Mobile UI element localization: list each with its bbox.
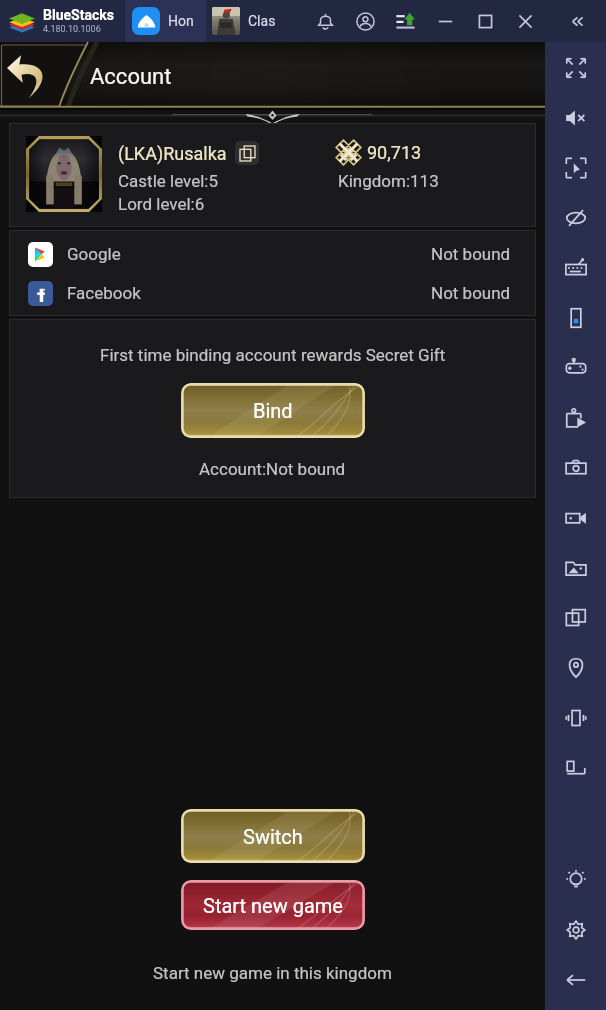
button[interactable]: Shake bbox=[545, 693, 606, 743]
staticText: Lord level:6 bbox=[118, 194, 205, 214]
staticText: Not bound bbox=[431, 283, 511, 303]
button[interactable]: Clas bbox=[206, 0, 291, 42]
button[interactable]: Mute bbox=[545, 93, 606, 143]
staticText: Hon bbox=[168, 13, 194, 29]
staticText: Facebook bbox=[67, 283, 141, 303]
staticText: BlueStacks bbox=[43, 7, 114, 23]
button[interactable]: Gamepad bbox=[545, 343, 606, 393]
button[interactable]: Notifications bbox=[305, 1, 345, 41]
button[interactable]: Minimize bbox=[425, 1, 465, 41]
button[interactable]: Account bbox=[345, 1, 385, 41]
button[interactable]: Screenshot bbox=[545, 443, 606, 493]
button[interactable]: Cursor bbox=[545, 143, 606, 193]
staticText: Castle level:5 bbox=[118, 171, 218, 191]
button[interactable]: Eco mode bbox=[545, 193, 606, 243]
button[interactable]: Media manager bbox=[545, 543, 606, 593]
staticText: Switch bbox=[243, 825, 303, 848]
button[interactable]: Macro bbox=[545, 393, 606, 443]
button[interactable]: Location bbox=[545, 643, 606, 693]
button[interactable]: Rotate bbox=[545, 293, 606, 343]
button[interactable]: Multi-instance bbox=[545, 593, 606, 643]
staticText: First time binding account rewards Secre… bbox=[100, 345, 446, 365]
button[interactable]: Collapse bbox=[561, 6, 591, 36]
button[interactable]: Back bbox=[4, 51, 54, 101]
staticText: Kingdom:113 bbox=[338, 171, 439, 191]
button[interactable]: Start new game bbox=[181, 880, 365, 930]
staticText: Bind bbox=[253, 399, 293, 422]
button[interactable]: Google bbox=[9, 240, 534, 268]
staticText: Clas bbox=[248, 13, 276, 29]
button[interactable]: Back bbox=[545, 955, 606, 1005]
button[interactable]: Tips bbox=[545, 855, 606, 905]
staticText: 4.180.10.1006 bbox=[43, 24, 101, 35]
staticText: Start new game bbox=[203, 894, 343, 917]
button[interactable]: Hon bbox=[125, 0, 206, 42]
button[interactable]: Facebook bbox=[9, 279, 534, 307]
staticText: Start new game in this kingdom bbox=[153, 963, 392, 983]
button[interactable]: Record bbox=[545, 493, 606, 543]
button[interactable]: Layout bbox=[545, 743, 606, 793]
staticText: Account bbox=[90, 64, 172, 90]
staticText: Not bound bbox=[431, 244, 511, 264]
button[interactable]: Copy name bbox=[235, 141, 259, 165]
button[interactable]: Switch bbox=[181, 809, 365, 863]
staticText: 90,713 bbox=[367, 142, 422, 163]
button[interactable]: Upgrade bbox=[385, 1, 425, 41]
button[interactable]: BlueStacks bbox=[0, 0, 125, 42]
staticText: (LKA)Rusalka bbox=[118, 143, 227, 164]
staticText: Account:Not bound bbox=[199, 459, 346, 479]
button[interactable]: Fullscreen bbox=[545, 43, 606, 93]
button[interactable]: Settings bbox=[545, 905, 606, 955]
button[interactable]: Keyboard controls bbox=[545, 243, 606, 293]
button[interactable]: Player avatar bbox=[26, 136, 102, 212]
button[interactable]: Bind bbox=[181, 383, 365, 438]
staticText: Google bbox=[67, 244, 121, 264]
button[interactable]: Maximize bbox=[465, 1, 505, 41]
button[interactable]: Close bbox=[505, 1, 545, 41]
